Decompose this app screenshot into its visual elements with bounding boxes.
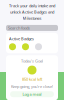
- staticText: Search foods: [8, 25, 30, 31]
- staticText: Log a meal: [22, 91, 41, 97]
- staticText: Milestones: [22, 16, 41, 21]
- staticText: Keep going, you're close!: [11, 84, 53, 89]
- staticText: Active Badges: [9, 36, 34, 41]
- staticText: 850 kcal left: [22, 77, 42, 82]
- staticText: Today's Goal: [21, 58, 43, 63]
- staticText: unlock Active Badges and: [10, 9, 54, 15]
- staticText: Track your daily intake and: [9, 3, 55, 8]
- button[interactable]: Log a meal: [10, 91, 54, 97]
- button[interactable]: Search foods: [6, 25, 58, 31]
